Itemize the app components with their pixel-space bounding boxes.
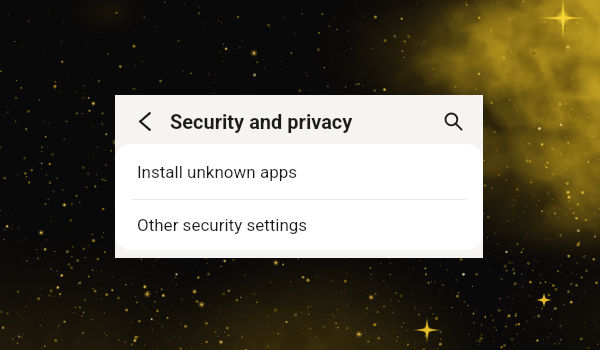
button[interactable]: Install unknown apps xyxy=(115,144,483,199)
button[interactable]: Other security settings xyxy=(115,200,483,250)
button[interactable]: Search xyxy=(437,105,471,139)
staticText: Other security settings xyxy=(137,215,308,235)
staticText: Install unknown apps xyxy=(137,162,298,182)
button[interactable]: Navigate up xyxy=(128,104,162,138)
staticText: Security and privacy xyxy=(170,110,353,133)
